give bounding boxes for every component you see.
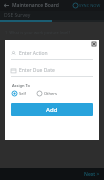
staticText: Others xyxy=(44,91,57,96)
other: Sync xyxy=(73,3,78,8)
button[interactable]: Sync xyxy=(73,3,101,8)
button[interactable]: Others xyxy=(37,91,57,96)
button[interactable]: Add xyxy=(11,103,93,116)
staticText: Self xyxy=(19,91,26,96)
button[interactable]: Close xyxy=(91,41,97,47)
staticText: SYNC NOW xyxy=(79,3,101,8)
button[interactable]: Self xyxy=(12,91,26,96)
staticText: Maintenance Board xyxy=(12,2,59,9)
staticText: Enter Action xyxy=(19,50,48,57)
staticText: Assign To xyxy=(12,83,31,88)
button[interactable]: Back xyxy=(0,0,12,11)
staticText: DSE Survey xyxy=(4,12,31,19)
staticText: Add xyxy=(46,106,58,114)
staticText: Next > xyxy=(84,171,100,178)
button[interactable]: Next > xyxy=(84,171,100,178)
staticText: Enter Due Date xyxy=(19,67,55,74)
